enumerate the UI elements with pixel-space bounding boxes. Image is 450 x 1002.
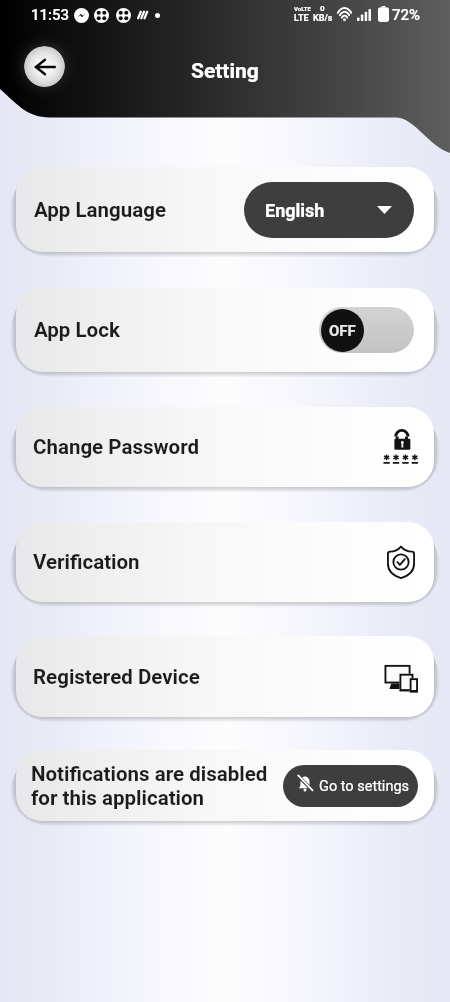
staticText: Setting [191, 59, 259, 84]
button[interactable]: Go to settings [283, 765, 418, 807]
staticText: Go to settings [319, 778, 410, 795]
staticText: Registered Device [33, 665, 200, 689]
staticText: 0 [320, 4, 325, 13]
button[interactable]: Change Password [16, 407, 434, 487]
staticText: App Language [34, 198, 167, 222]
staticText: KB/s [313, 13, 333, 24]
staticText: 11:53 [31, 6, 70, 24]
button[interactable]: English [244, 182, 414, 238]
button[interactable]: Registered Device [16, 636, 434, 717]
button[interactable]: Verification [16, 522, 434, 602]
button[interactable]: Back [24, 46, 65, 87]
staticText: Verification [33, 550, 140, 574]
button[interactable]: App lock toggle, off [319, 307, 414, 353]
button[interactable]: App Lock [16, 288, 434, 372]
staticText: App Lock [34, 318, 120, 342]
staticText: Change Password [33, 435, 200, 459]
staticText: VoLTE [294, 5, 311, 12]
staticText: LTE [294, 13, 309, 24]
staticText: Notifications are disabled for this appl… [31, 762, 268, 810]
button[interactable]: Notifications are disabled for this appl… [16, 750, 434, 821]
staticText: English [265, 200, 325, 221]
button[interactable]: App Language [16, 167, 434, 252]
staticText: OFF [329, 322, 356, 340]
staticText: 72% [392, 6, 421, 24]
